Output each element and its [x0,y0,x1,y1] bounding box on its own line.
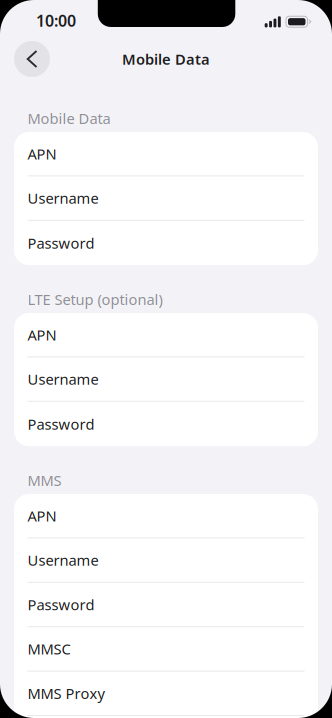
staticText: MMS [27,470,61,490]
button[interactable]: Password [14,583,318,627]
staticText: APN [27,506,56,525]
button[interactable]: Maximum Message Size [14,716,318,718]
staticText: Password [27,233,94,253]
staticText: Username [27,188,98,208]
button[interactable]: APN [14,132,318,176]
staticText: APN [27,325,56,344]
button[interactable]: MMSC [14,627,318,672]
button[interactable]: Back [14,41,50,77]
staticText: Password [27,595,94,614]
button[interactable]: Password [14,402,318,446]
staticText: Password [27,414,94,434]
staticText: LTE Setup (optional) [27,289,162,309]
staticText: APN [27,144,56,163]
button[interactable]: APN [14,313,318,357]
button[interactable]: Username [14,357,318,402]
button[interactable]: Username [14,176,318,221]
staticText: Username [27,369,98,389]
staticText: MMS Proxy [27,684,104,703]
button[interactable]: MMS Proxy [14,672,318,716]
staticText: 10:00 [36,10,76,31]
button[interactable]: Username [14,538,318,583]
staticText: Mobile Data [122,49,210,69]
button[interactable]: Password [14,221,318,265]
staticText: MMSC [27,639,70,659]
button[interactable]: APN [14,494,318,538]
staticText: Username [27,550,98,570]
staticText: Mobile Data [27,108,110,128]
